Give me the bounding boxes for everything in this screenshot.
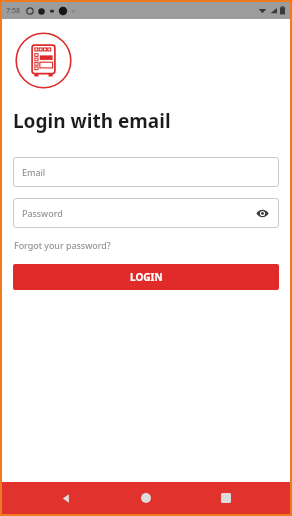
button[interactable]: Home	[130, 482, 162, 514]
staticText: Email	[22, 166, 46, 178]
button[interactable]: Email	[13, 157, 279, 187]
staticText: 7:58	[6, 6, 20, 16]
staticText: Login with email	[13, 108, 171, 134]
button[interactable]: LOGIN	[13, 264, 279, 290]
staticText: LOGIN	[130, 270, 163, 284]
button[interactable]: Show password	[254, 205, 270, 221]
button[interactable]: Recents	[210, 482, 242, 514]
button[interactable]: Password	[13, 198, 279, 228]
button[interactable]: Forgot your password?	[14, 239, 111, 251]
staticText: Password	[22, 207, 63, 219]
button[interactable]: Back	[50, 482, 82, 514]
